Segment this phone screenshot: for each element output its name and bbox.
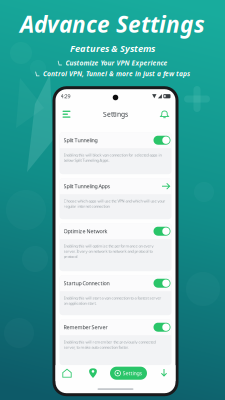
staticText: Choose which apps will use the VPN and w… [63, 198, 165, 209]
button[interactable]: Optimize Network [59, 223, 171, 271]
button[interactable]: Split Tunneling Apps [59, 178, 171, 219]
staticText: Optimize Network [63, 228, 107, 235]
staticText: Split Tunneling [63, 137, 97, 144]
button[interactable]: Downloads [155, 365, 173, 381]
staticText: Features & Systems [70, 42, 155, 54]
button[interactable]: Servers [84, 365, 102, 381]
button[interactable]: Notifications [157, 106, 171, 122]
button[interactable]: Remember Server [59, 319, 171, 365]
staticText: Advance Settings [20, 9, 205, 39]
button[interactable]: Startup Connection [59, 275, 171, 315]
staticText: Enabling this will block vpn connection … [63, 152, 161, 163]
staticText: Remember Server [63, 324, 107, 331]
button[interactable]: Menu [59, 106, 73, 122]
staticText: Enabling this will optimize the performa… [63, 243, 153, 259]
staticText: Settings [103, 110, 128, 119]
button[interactable]: Split Tunneling [59, 132, 171, 174]
staticText: Enabling this will start a vpn connectio… [63, 295, 161, 306]
staticText: Customize Your VPN Experience [65, 58, 167, 67]
button[interactable]: Settings [110, 367, 147, 380]
staticText: Startup Connection [63, 280, 109, 287]
staticText: Settings [122, 370, 142, 377]
button[interactable]: Home [58, 365, 76, 381]
staticText: Split Tunneling Apps [63, 183, 110, 190]
staticText: 4:29 [60, 93, 70, 100]
staticText: Control VPN, Tunnel & more in just a few… [43, 69, 190, 78]
staticText: Enabling this will remember the previous… [63, 339, 155, 350]
